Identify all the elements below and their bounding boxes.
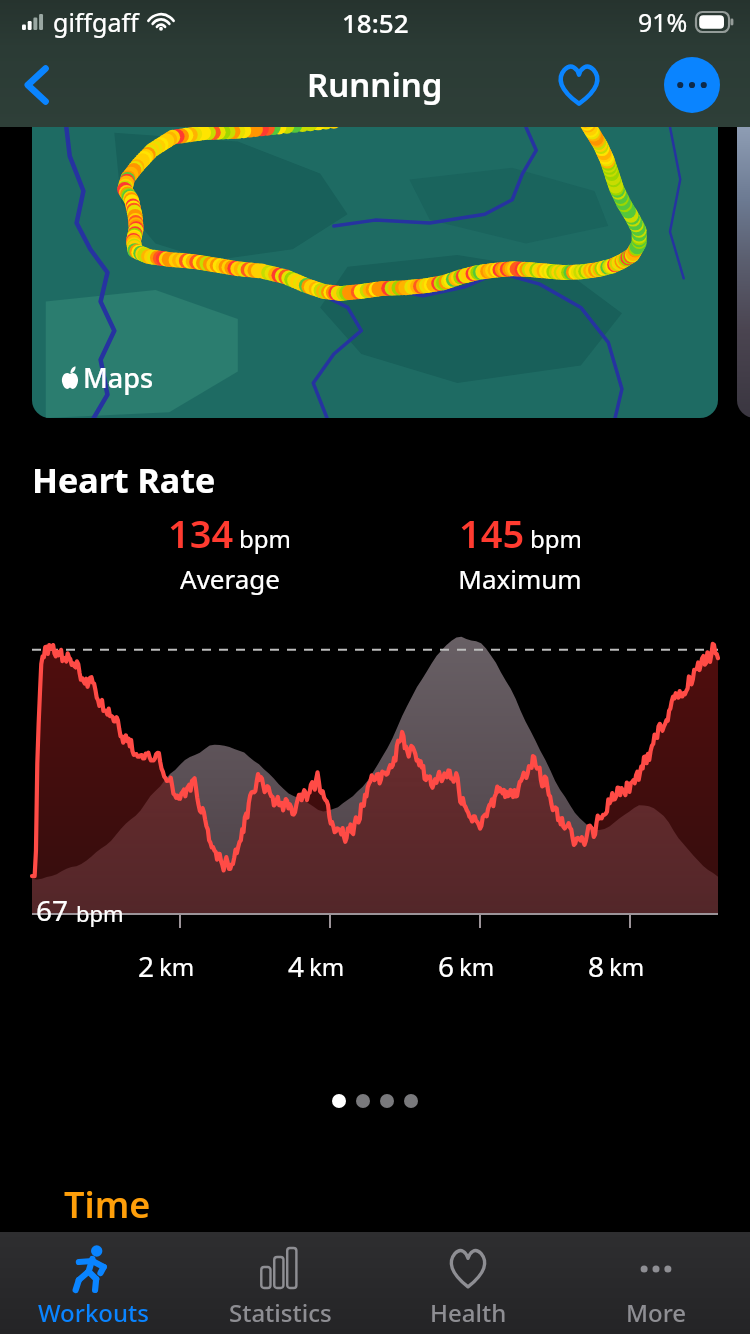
button[interactable] — [332, 1094, 346, 1108]
staticText: km — [609, 950, 645, 983]
staticText: km — [309, 950, 345, 983]
button[interactable]: Favorite — [546, 52, 612, 118]
staticText: Workouts — [38, 1296, 149, 1329]
staticText: 145 — [459, 507, 525, 559]
staticText: Maps — [83, 359, 154, 396]
staticText: 91% — [638, 5, 688, 39]
button[interactable]: Time — [64, 1180, 151, 1229]
staticText: 67 — [36, 891, 69, 929]
staticText: 8 — [588, 947, 605, 985]
staticText: km — [159, 950, 195, 983]
staticText: bpm — [530, 522, 582, 555]
staticText: bpm — [239, 522, 291, 555]
button[interactable] — [404, 1094, 418, 1108]
staticText: Average — [180, 561, 280, 596]
button[interactable] — [737, 127, 750, 418]
button[interactable]: More options — [659, 52, 725, 118]
staticText: km — [459, 950, 495, 983]
button[interactable] — [380, 1094, 394, 1108]
staticText: giffgaff — [53, 5, 139, 39]
button[interactable]: Statistics — [187, 1232, 374, 1334]
button[interactable]: Health — [374, 1232, 562, 1334]
staticText: 18:52 — [342, 5, 409, 40]
staticText: 2 — [138, 947, 155, 985]
button[interactable]: Maps — [32, 127, 718, 418]
staticText: bpm — [76, 898, 124, 928]
staticText: Health — [430, 1296, 507, 1329]
staticText: 4 — [288, 947, 305, 985]
staticText: Running — [307, 62, 443, 107]
button[interactable]: Back — [6, 52, 72, 118]
button[interactable]: Workouts — [0, 1232, 187, 1334]
staticText: 6 — [438, 947, 455, 985]
staticText: Maximum — [458, 561, 582, 596]
staticText: Heart Rate — [32, 457, 216, 503]
staticText: 134 — [168, 507, 234, 559]
staticText: More — [626, 1296, 687, 1329]
button[interactable]: More — [562, 1232, 750, 1334]
button[interactable]: 67 — [0, 595, 750, 1015]
button[interactable] — [356, 1094, 370, 1108]
staticText: Statistics — [229, 1296, 332, 1329]
